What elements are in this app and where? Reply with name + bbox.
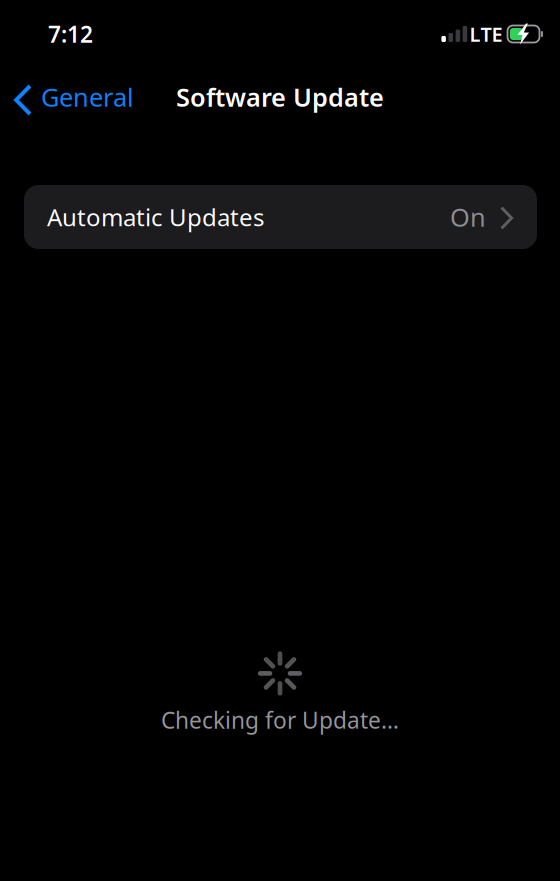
staticText: On: [450, 200, 486, 234]
button[interactable]: General: [0, 72, 143, 122]
button[interactable]: Automatic Updates: [24, 185, 537, 249]
staticText: LTE: [469, 21, 502, 47]
staticText: Software Update: [176, 80, 384, 114]
staticText: General: [41, 80, 134, 114]
staticText: Checking for Update…: [161, 705, 399, 735]
staticText: 7:12: [48, 19, 93, 49]
staticText: Automatic Updates: [47, 201, 264, 233]
